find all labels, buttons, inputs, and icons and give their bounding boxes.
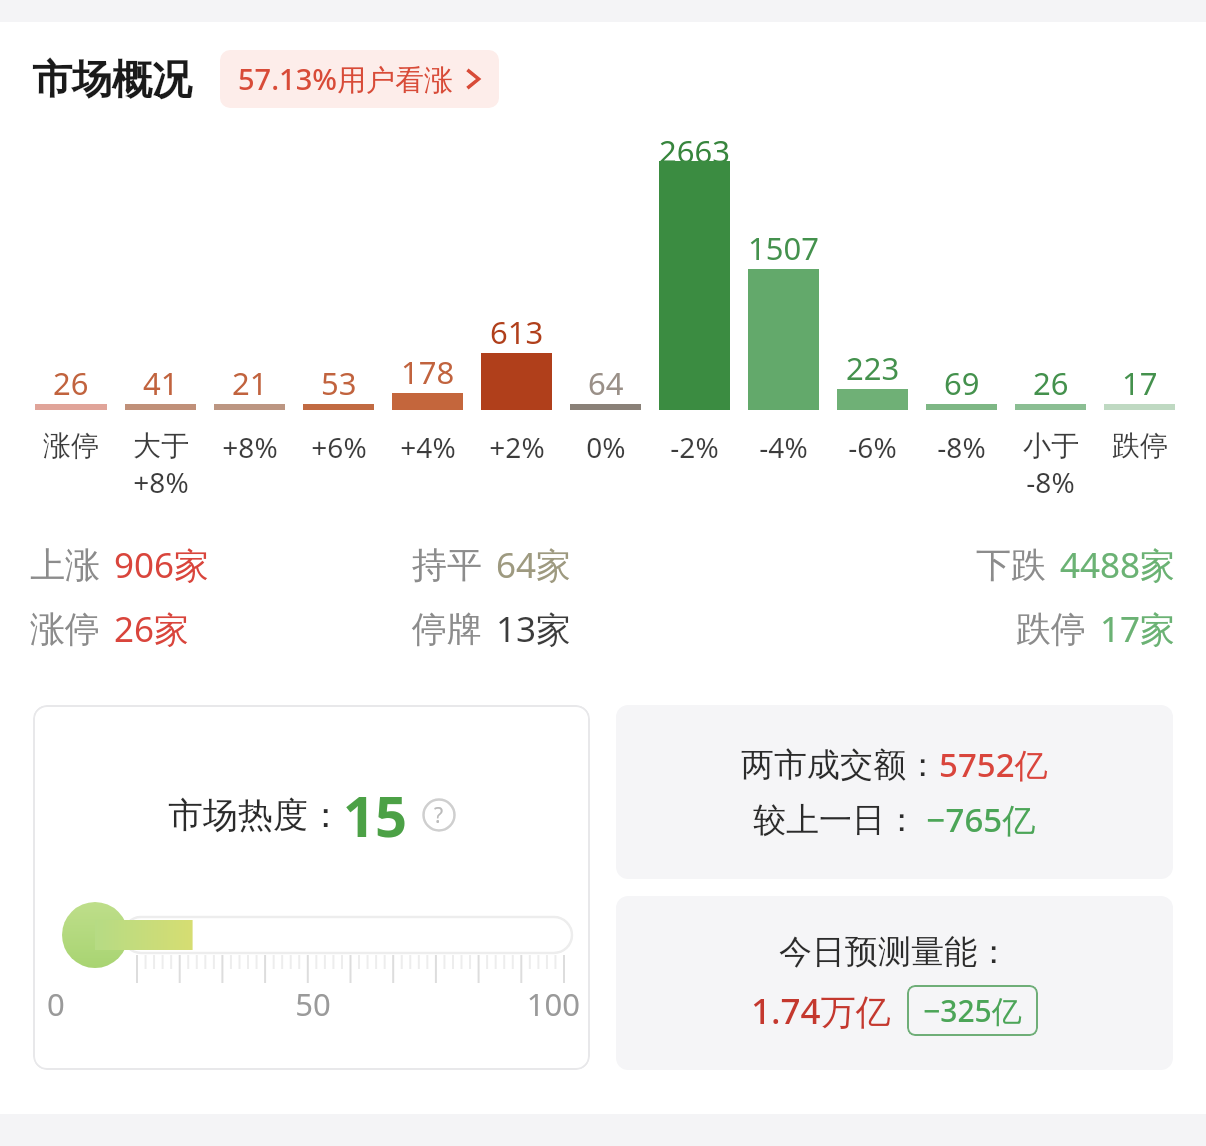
staticText: 0%: [586, 428, 626, 466]
staticText: 21: [232, 362, 268, 404]
button[interactable]: 今日预测量能：: [616, 896, 1173, 1070]
staticText: 跌停: [1112, 428, 1168, 463]
staticText: 178: [401, 351, 455, 393]
staticText: 小于: [1023, 428, 1079, 463]
staticText: 下跌: [976, 543, 1046, 587]
staticText: 1.74万亿: [751, 987, 891, 1035]
staticText: 涨停: [30, 607, 100, 651]
staticText: +8%: [222, 428, 278, 466]
staticText: 17: [1122, 362, 1158, 404]
staticText: 2663: [659, 130, 730, 161]
staticText: 613: [490, 311, 544, 353]
staticText: 64家: [496, 541, 572, 589]
staticText: +2%: [489, 428, 545, 466]
button[interactable]: 市场热度：: [33, 705, 590, 1070]
staticText: 市场概况: [32, 54, 192, 104]
staticText: 两市成交额：: [741, 744, 939, 786]
staticText: 大于: [133, 428, 189, 463]
staticText: 223: [846, 347, 900, 389]
staticText: 上涨: [30, 543, 100, 587]
staticText: 较上一日：: [753, 799, 918, 841]
staticText: 64: [588, 362, 624, 404]
staticText: 53: [321, 362, 357, 404]
staticText: 今日预测量能：: [779, 931, 1010, 973]
button[interactable]: 57.13%用户看涨: [220, 50, 499, 108]
staticText: 跌停: [1016, 607, 1086, 651]
staticText: 17家: [1100, 605, 1176, 653]
staticText: 15: [343, 777, 408, 853]
staticText: 13家: [496, 605, 572, 653]
staticText: 69: [944, 362, 980, 404]
staticText: +8%: [133, 463, 189, 501]
staticText: 持平: [412, 543, 482, 587]
staticText: 26家: [114, 605, 190, 653]
staticText: 906家: [114, 541, 210, 589]
button[interactable]: 帮助: [422, 798, 456, 832]
staticText: -6%: [848, 428, 897, 466]
staticText: 57.13%用户看涨: [238, 59, 453, 99]
staticText: 停牌: [412, 607, 482, 651]
staticText: −765亿: [918, 797, 1036, 842]
staticText: 市场热度：: [168, 793, 343, 837]
staticText: -2%: [670, 428, 719, 466]
staticText: 0: [47, 983, 224, 1025]
staticText: 4488家: [1060, 541, 1176, 589]
staticText: 100: [402, 983, 580, 1025]
staticText: -4%: [759, 428, 808, 466]
staticText: 50: [224, 983, 402, 1025]
staticText: -8%: [937, 428, 986, 466]
staticText: −325亿: [923, 990, 1022, 1031]
staticText: ?: [434, 801, 444, 830]
staticText: 26: [1033, 362, 1069, 404]
staticText: 26: [53, 362, 89, 404]
staticText: 涨停: [43, 428, 99, 463]
staticText: +4%: [400, 428, 456, 466]
staticText: 1507: [748, 227, 819, 269]
button[interactable]: 两市成交额：: [616, 705, 1173, 879]
staticText: -8%: [1026, 463, 1075, 501]
staticText: +6%: [311, 428, 367, 466]
staticText: 41: [143, 362, 179, 404]
staticText: 5752亿: [939, 742, 1048, 787]
